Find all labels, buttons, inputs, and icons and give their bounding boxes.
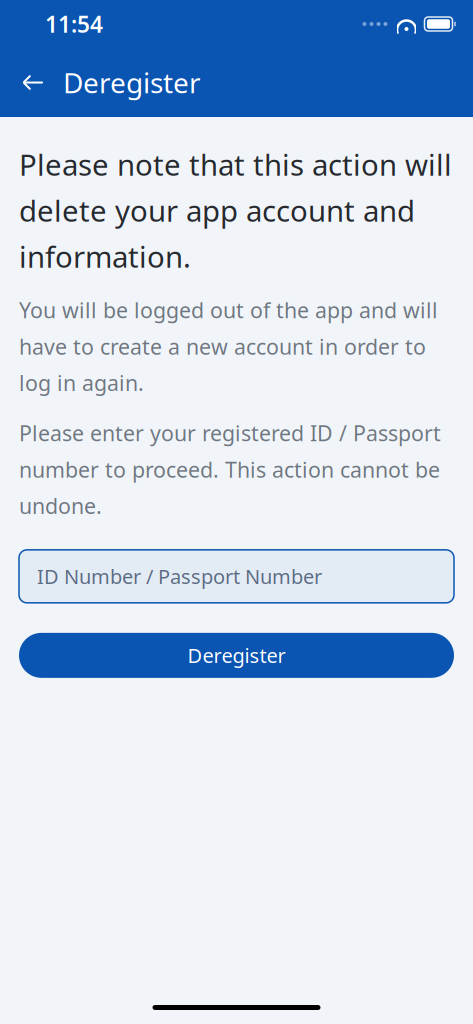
- staticText: Deregister: [187, 642, 285, 669]
- button[interactable]: Deregister: [19, 633, 454, 678]
- staticText: Deregister: [63, 64, 201, 101]
- staticText: Please note that this action will delete…: [19, 145, 452, 276]
- staticText: 11:54: [45, 9, 103, 39]
- staticText: Please enter your registered ID / Passpo…: [19, 419, 441, 520]
- button[interactable]: ID Number / Passport Number: [19, 550, 454, 603]
- staticText: You will be logged out of the app and wi…: [19, 296, 438, 397]
- button[interactable]: Back: [11, 60, 55, 104]
- staticText: ID Number / Passport Number: [37, 563, 322, 590]
